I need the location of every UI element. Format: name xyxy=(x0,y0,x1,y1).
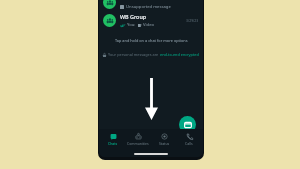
staticText: Video xyxy=(143,22,155,28)
button[interactable]: Chats xyxy=(101,132,125,147)
staticText: Calls xyxy=(185,141,193,146)
button[interactable]: Calls xyxy=(177,132,201,147)
button[interactable]: New chat xyxy=(179,116,196,133)
button[interactable]: Unsupported message xyxy=(99,0,203,13)
button[interactable]: WB Group xyxy=(99,13,203,33)
staticText: Status xyxy=(159,141,170,146)
staticText: 3/29/23 xyxy=(186,18,199,23)
staticText: Communities xyxy=(127,141,149,146)
staticText: You: xyxy=(127,22,136,28)
staticText: WB Group xyxy=(120,13,147,20)
staticText: Unsupported message xyxy=(126,4,171,10)
staticText: end-to-end encrypted xyxy=(160,52,199,57)
button[interactable]: Status xyxy=(152,132,176,147)
staticText: Your personal messages are xyxy=(108,52,160,57)
staticText: Tap and hold on a chat for more options xyxy=(115,38,188,43)
staticText: Chats xyxy=(108,141,118,146)
button[interactable]: Communities xyxy=(126,132,150,147)
